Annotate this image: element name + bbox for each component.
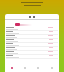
button[interactable] [5,55,59,59]
button[interactable]: Home [5,64,18,72]
button[interactable] [5,47,59,51]
button[interactable] [5,35,59,39]
button[interactable] [5,43,59,47]
button[interactable] [5,39,59,43]
button[interactable]: Profile [45,64,59,72]
button[interactable]: Alerts [31,64,45,72]
button[interactable] [5,31,59,35]
button[interactable]: Brand logo [5,15,59,19]
button[interactable]: Search [18,64,31,72]
button[interactable] [5,27,59,31]
button[interactable] [5,51,59,55]
button[interactable] [5,23,59,26]
